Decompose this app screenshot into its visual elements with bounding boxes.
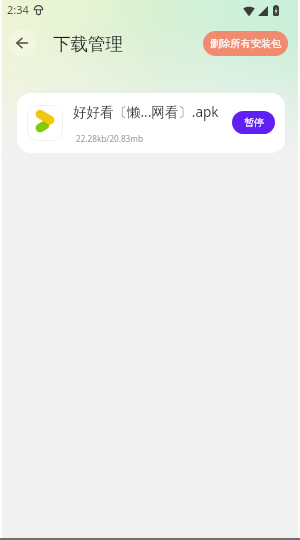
staticText: 暂停 xyxy=(244,116,264,129)
button[interactable]: 好好看〔懒...网看〕.apk xyxy=(17,93,285,153)
button[interactable]: 暂停 xyxy=(232,111,275,134)
staticText: 下载管理 xyxy=(53,33,123,55)
staticText: 删除所有安装包 xyxy=(210,37,282,50)
button[interactable]: 删除所有安装包 xyxy=(203,31,288,56)
button[interactable]: Back xyxy=(8,29,36,57)
staticText: 2:34 xyxy=(7,2,29,17)
staticText: 22.28kb/20.83mb xyxy=(76,133,143,144)
staticText: 好好看〔懒...网看〕.apk xyxy=(73,103,219,121)
